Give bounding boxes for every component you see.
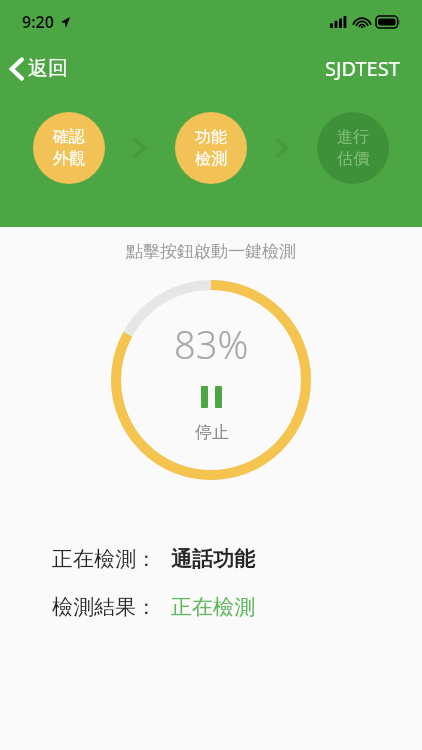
staticText: 檢測	[195, 149, 227, 169]
button[interactable]: 返回	[0, 50, 80, 87]
staticText: 進行	[337, 127, 369, 147]
staticText: 檢測結果：	[52, 594, 157, 620]
staticText: 正在檢測：	[52, 546, 157, 572]
staticText: 點擊按鈕啟動一鍵檢測	[0, 241, 422, 262]
staticText: 83%	[174, 318, 249, 370]
staticText: 返回	[28, 56, 68, 81]
staticText: 功能	[195, 127, 227, 147]
staticText: 停止	[195, 422, 229, 443]
staticText: 估價	[337, 149, 369, 169]
staticText: 外觀	[53, 149, 85, 169]
button[interactable]: 確認	[33, 112, 105, 184]
button[interactable]: 停止	[111, 280, 311, 480]
staticText: 9:20	[22, 11, 54, 33]
button[interactable]: 功能	[175, 112, 247, 184]
staticText: 正在檢測	[171, 594, 255, 620]
staticText: SJDTEST	[325, 55, 400, 82]
staticText: 確認	[53, 127, 85, 147]
staticText: 通話功能	[171, 546, 255, 572]
button[interactable]: 進行	[317, 112, 389, 184]
